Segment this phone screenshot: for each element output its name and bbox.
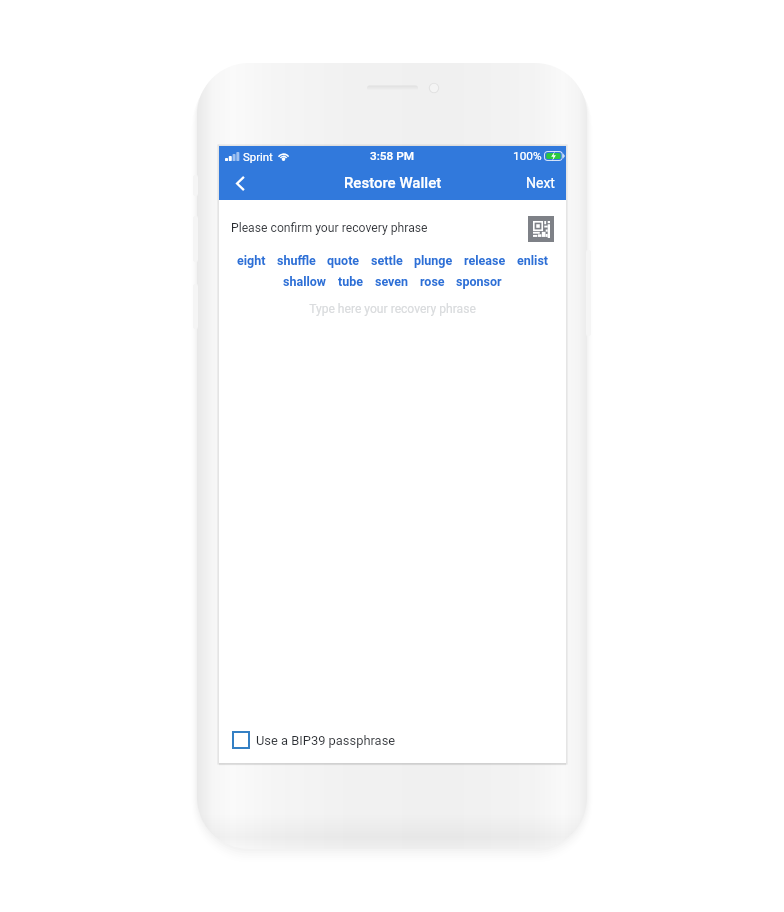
staticText: Please confirm your recovery phrase <box>231 221 428 235</box>
staticText: Restore Wallet <box>344 174 442 192</box>
button[interactable]: Back <box>222 166 258 200</box>
button[interactable]: Next <box>515 169 566 197</box>
staticText: seven <box>375 274 409 289</box>
button[interactable]: Scan QR code <box>528 216 554 242</box>
staticText: tube <box>338 274 364 289</box>
staticText: sponsor <box>456 274 502 289</box>
staticText: settle <box>371 253 403 268</box>
staticText: Type here your recovery phrase <box>219 302 566 316</box>
staticText: Next <box>526 175 555 191</box>
button[interactable]: Use a BIP39 passphrase <box>219 723 566 757</box>
staticText: Sprint <box>243 150 273 163</box>
staticText: 3:58 PM <box>370 149 415 163</box>
staticText: release <box>464 253 506 268</box>
staticText: 100% <box>513 149 542 163</box>
staticText: plunge <box>414 253 453 268</box>
staticText: quote <box>327 253 360 268</box>
staticText: shallow <box>283 274 327 289</box>
staticText: enlist <box>517 253 549 268</box>
staticText: Use a BIP39 passphrase <box>256 733 396 748</box>
staticText: rose <box>420 274 445 289</box>
staticText: shuffle <box>277 253 316 268</box>
staticText: eight <box>237 253 266 268</box>
